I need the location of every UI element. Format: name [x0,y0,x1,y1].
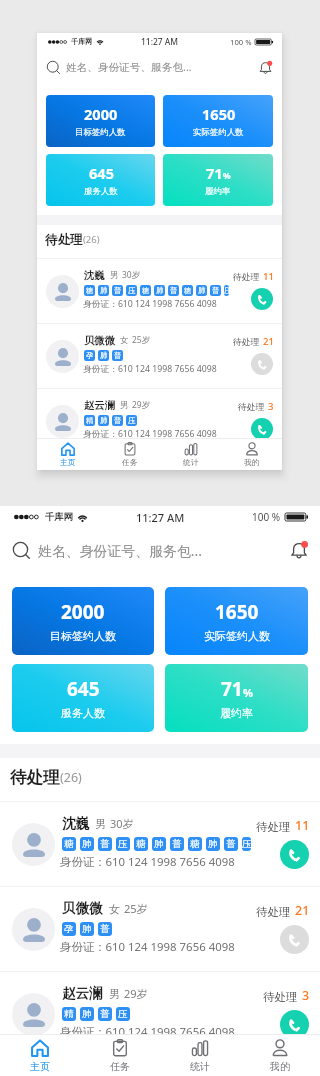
button[interactable]: 71 [165,664,308,732]
staticText: 压 [128,286,136,295]
button[interactable]: Notifications [288,539,310,561]
staticText: 女 [109,902,120,916]
staticText: 100 % [230,37,252,47]
staticText: 履约率 [220,706,253,720]
staticText: 压 [128,416,136,425]
button[interactable]: 统计 [160,1035,240,1076]
staticText: 待处理 [10,767,60,788]
staticText: 21 [295,902,310,919]
staticText: 千库网 [71,37,93,46]
staticText: 71 [206,163,223,183]
button[interactable]: Call [280,840,309,869]
staticText: 11 [295,817,310,834]
staticText: 实际签约人数 [193,127,244,138]
staticText: 肺 [82,1008,92,1020]
button[interactable]: 主页 [37,439,99,470]
button[interactable]: 645 [46,154,155,206]
staticText: 肺 [100,351,108,360]
staticText: 3 [268,400,274,413]
staticText: 肺 [100,286,108,295]
button[interactable]: 主页 [0,1035,80,1076]
button[interactable]: Call [251,288,273,310]
staticText: 任务 [122,458,138,468]
staticText: 待处理 [45,232,83,248]
staticText: % [243,685,253,700]
staticText: 71 [221,676,243,702]
staticText: 目标签约人数 [50,629,116,643]
staticText: 身份证：610 124 1998 7656 4098 [83,428,217,440]
staticText: 普 [100,923,110,935]
staticText: 2000 [61,599,105,625]
button[interactable]: 2000 [46,95,155,147]
button[interactable]: 1650 [165,587,308,655]
button[interactable]: 沈巍 [0,801,320,886]
button[interactable]: 2000 [12,587,154,655]
staticText: (26) [60,769,82,786]
staticText: 贝微微 [84,334,115,347]
staticText: 糖 [86,286,94,295]
staticText: 千库网 [45,511,73,523]
staticText: 11:27 AM [141,36,178,47]
staticText: 统计 [190,1060,210,1073]
button[interactable]: 贝微微 [37,323,282,388]
staticText: 普 [226,838,236,850]
staticText: 普 [100,838,110,850]
staticText: 姓名、身份证号、服务包... [66,60,192,75]
staticText: 实际签约人数 [204,629,270,643]
staticText: 肺 [154,838,164,850]
staticText: 待处理 [256,820,291,834]
button[interactable]: Call [280,1010,309,1039]
button[interactable]: Call [280,925,309,954]
staticText: 男 [120,400,129,411]
button[interactable]: Notifications [257,59,274,76]
button[interactable]: Call [251,418,273,440]
staticText: 30岁 [110,816,134,831]
button[interactable]: 我的 [221,439,282,470]
staticText: 贝微微 [62,900,103,917]
staticText: 压 [242,838,251,850]
staticText: 服务人数 [84,186,118,197]
button[interactable]: 我的 [240,1035,320,1076]
button[interactable]: 统计 [160,439,221,470]
button[interactable]: 赵云澜 [0,971,320,1056]
button[interactable]: 赵云澜 [37,388,282,453]
staticText: 精 [64,1008,74,1020]
staticText: 肺 [82,923,92,935]
staticText: 普 [114,416,122,425]
staticText: 待处理 [256,905,291,919]
staticText: 服务人数 [61,706,105,720]
staticText: 身份证：610 124 1998 7656 4098 [83,363,217,375]
staticText: 糖 [64,838,74,850]
staticText: 精 [86,416,94,425]
staticText: 普 [114,286,122,295]
staticText: 姓名、身份证号、服务包... [38,541,202,560]
button[interactable]: 沈巍 [37,258,282,323]
staticText: 糖 [142,286,150,295]
staticText: 主页 [60,458,76,468]
staticText: 100 % [252,510,281,524]
staticText: 任务 [110,1060,130,1073]
button[interactable]: Call [251,353,273,375]
staticText: 待处理 [233,272,260,283]
button[interactable]: 任务 [80,1035,160,1076]
staticText: 29岁 [124,986,148,1001]
staticText: 待处理 [263,990,298,1004]
button[interactable]: 1650 [163,95,273,147]
staticText: 糖 [136,838,146,850]
staticText: 身份证：610 124 1998 7656 4098 [60,939,235,955]
staticText: 普 [172,838,182,850]
staticText: 肺 [198,286,206,295]
staticText: 主页 [30,1060,50,1073]
button[interactable]: 贝微微 [0,886,320,971]
button[interactable]: 645 [12,664,154,732]
staticText: 统计 [183,458,199,468]
staticText: 肺 [82,838,92,850]
button[interactable]: 任务 [99,439,160,470]
staticText: 11:27 AM [136,510,185,525]
staticText: 赵云澜 [62,985,103,1002]
staticText: 我的 [270,1060,290,1073]
staticText: 11 [263,270,274,283]
button[interactable]: 71 [163,154,273,206]
staticText: 21 [263,335,274,348]
staticText: 29岁 [132,399,151,411]
